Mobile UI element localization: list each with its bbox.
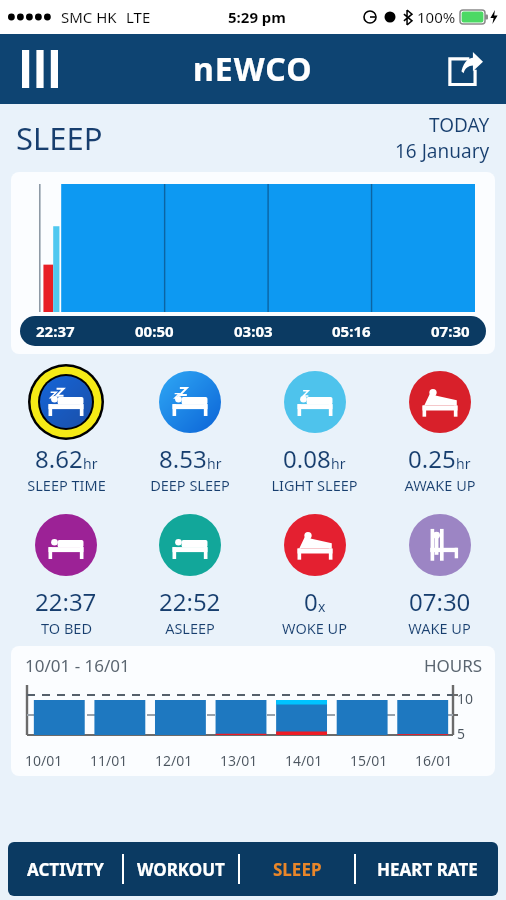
staticText: 8.62 (35, 442, 83, 475)
button[interactable]: 0 (252, 507, 377, 638)
button[interactable]: 0.08 (252, 364, 377, 495)
button[interactable]: 8.53 (128, 364, 252, 495)
staticText: hr (331, 454, 346, 473)
staticText: 03:03 (234, 321, 273, 341)
staticText: 13/01 (220, 751, 258, 770)
button[interactable]: 22:37 (11, 172, 495, 354)
button[interactable]: WORKOUT (124, 842, 238, 896)
staticText: LIGHT SLEEP (271, 475, 358, 495)
staticText: 5:29 pm (228, 7, 286, 27)
staticText: 15/01 (350, 751, 388, 770)
staticText: 5 (457, 724, 466, 743)
staticText: 0.08 (283, 442, 331, 475)
button[interactable]: 22:52 (128, 507, 252, 638)
button[interactable]: Share (438, 42, 492, 96)
staticText: SLEEP (16, 117, 103, 159)
staticText: ASLEEP (165, 618, 215, 638)
staticText: LTE (126, 7, 151, 27)
staticText: SLEEP TIME (27, 475, 106, 495)
button[interactable]: 10/01 - 16/01 (11, 646, 495, 776)
staticText: 07:30 (409, 585, 471, 618)
staticText: DEEP SLEEP (150, 475, 230, 495)
staticText: HOURS (424, 654, 483, 677)
staticText: WAKE UP (408, 618, 471, 638)
staticText: 100% (417, 7, 456, 27)
staticText: nEWCO (193, 47, 313, 91)
staticText: WOKE UP (282, 618, 347, 638)
button[interactable]: 0.25 (377, 364, 502, 495)
staticText: SMC HK (61, 7, 117, 27)
staticText: 05:16 (332, 321, 371, 341)
staticText: 10/01 - 16/01 (25, 654, 130, 677)
staticText: TO BED (41, 618, 92, 638)
staticText: 14/01 (285, 751, 323, 770)
staticText: WORKOUT (137, 858, 225, 881)
staticText: 22:37 (35, 585, 97, 618)
staticText: HEART RATE (377, 858, 478, 881)
button[interactable]: 07:30 (377, 507, 502, 638)
staticText: 11/01 (90, 751, 128, 770)
staticText: 10 (457, 689, 474, 708)
button[interactable]: 8.62 (4, 364, 128, 495)
button[interactable]: HEART RATE (356, 842, 498, 896)
staticText: ACTIVITY (27, 858, 104, 881)
staticText: TODAY (429, 112, 490, 138)
staticText: 16 January (395, 138, 490, 164)
staticText: x (318, 597, 326, 616)
staticText: 0 (304, 585, 318, 618)
button[interactable]: 22:37 (4, 507, 128, 638)
staticText: AWAKE UP (404, 475, 476, 495)
staticText: SLEEP (273, 858, 322, 881)
staticText: 0.25 (408, 442, 456, 475)
button[interactable]: ACTIVITY (8, 842, 122, 896)
staticText: 00:50 (135, 321, 174, 341)
staticText: hr (207, 454, 222, 473)
staticText: 22:37 (36, 321, 75, 341)
staticText: 12/01 (155, 751, 193, 770)
button[interactable]: Menu (12, 41, 68, 97)
staticText: 07:30 (431, 321, 470, 341)
staticText: 10/01 (25, 751, 63, 770)
staticText: hr (83, 454, 98, 473)
staticText: 22:52 (159, 585, 221, 618)
staticText: 16/01 (415, 751, 453, 770)
staticText: hr (456, 454, 471, 473)
staticText: 8.53 (159, 442, 207, 475)
button[interactable]: SLEEP (240, 842, 354, 896)
